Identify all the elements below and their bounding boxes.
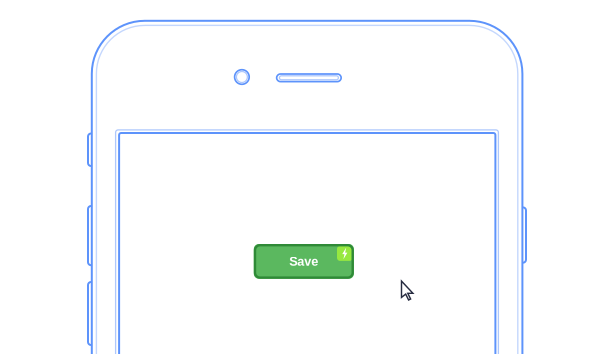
button[interactable]: Save (254, 244, 354, 279)
staticText: Save (289, 254, 318, 268)
